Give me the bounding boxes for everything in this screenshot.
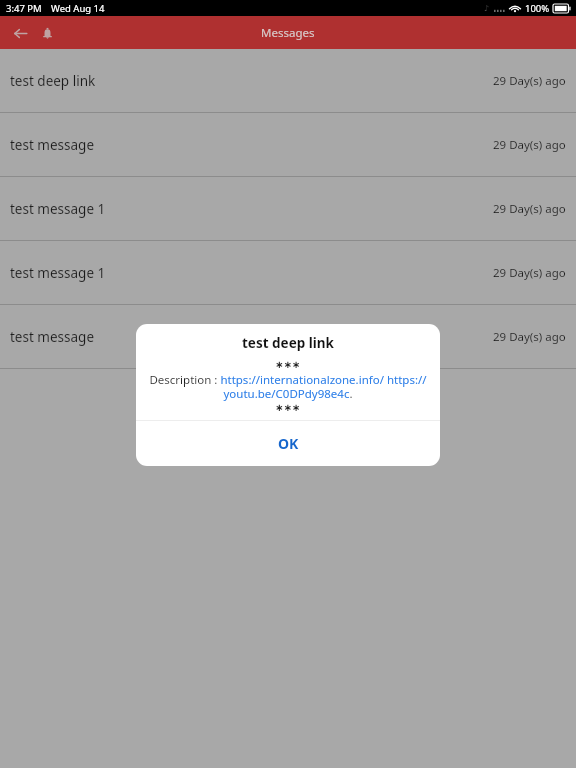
button[interactable]: test message 1 (0, 241, 576, 304)
button[interactable]: OK (136, 421, 440, 466)
staticText: test deep link (242, 334, 334, 352)
staticText: 29 Day(s) ago (493, 137, 566, 153)
staticText: Description : https://internationalzone.… (149, 372, 427, 402)
staticText: 29 Day(s) ago (493, 265, 566, 281)
button[interactable]: Notifications (34, 20, 60, 46)
staticText: 3:47 PM (6, 2, 42, 15)
staticText: ∗∗∗ (275, 402, 301, 414)
staticText: 29 Day(s) ago (493, 73, 566, 89)
staticText: ∗∗∗ (275, 359, 301, 371)
button[interactable]: test message 1 (0, 177, 576, 240)
button[interactable]: Back (7, 20, 33, 46)
staticText: test message (10, 136, 94, 154)
staticText: test message 1 (10, 200, 106, 218)
staticText: 29 Day(s) ago (493, 329, 566, 345)
button[interactable]: test deep link (0, 49, 576, 112)
staticText: test message (10, 328, 94, 346)
staticText: 100% (525, 2, 550, 15)
staticText: test deep link (10, 72, 96, 90)
staticText: 29 Day(s) ago (493, 201, 566, 217)
button[interactable]: test message (0, 305, 576, 368)
staticText: OK (278, 434, 299, 453)
staticText: test message 1 (10, 264, 106, 282)
button[interactable]: test message (0, 113, 576, 176)
staticText: ♪ (484, 4, 490, 13)
staticText: Messages (261, 25, 315, 41)
staticText: Wed Aug 14 (51, 2, 105, 15)
